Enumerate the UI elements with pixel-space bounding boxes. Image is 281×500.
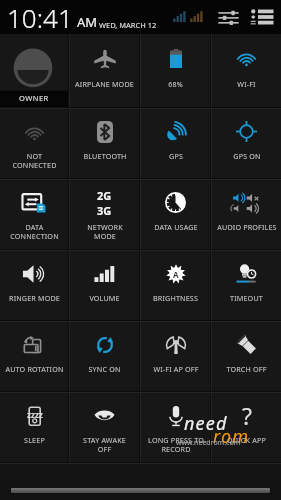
staticText: 2G — [97, 188, 112, 203]
staticText: NETWORK MODE — [87, 222, 123, 241]
staticText: AUDIO PROFILES — [217, 222, 277, 232]
staticText: NOT CONNECTED — [12, 151, 57, 170]
button[interactable]: zzzz — [0, 393, 68, 462]
staticText: need — [184, 411, 228, 436]
staticText: WI-FI — [237, 79, 256, 89]
button[interactable]: AIRPLANE MODE — [70, 34, 139, 107]
button[interactable]: Notifications list — [247, 5, 275, 29]
button[interactable]: AUTO ROTATION — [0, 322, 68, 391]
button[interactable]: 2G — [70, 180, 139, 249]
staticText: TORCH OFF — [226, 364, 267, 374]
staticText: zzzz — [27, 409, 43, 420]
staticText: AUTO ROTATION — [5, 364, 64, 374]
button[interactable]: ? — [212, 393, 281, 462]
button[interactable]: SYNC ON — [70, 322, 139, 391]
button[interactable]: STAY AWAKE OFF — [70, 393, 139, 462]
staticText: GPS — [169, 151, 183, 161]
staticText: 10:41 — [7, 0, 73, 34]
button[interactable]: LONG PRESS TO RECORD — [141, 393, 210, 462]
button[interactable]: DATA CONNECTION — [0, 180, 68, 249]
button[interactable]: OWNER — [0, 34, 68, 107]
staticText: QUICK APP — [227, 435, 266, 445]
button[interactable]: WI-FI AP OFF — [141, 322, 210, 391]
staticText: DATA CONNECTION — [10, 222, 59, 241]
button[interactable]: RINGER MODE — [0, 251, 68, 320]
staticText: BRIGHTNESS — [153, 293, 198, 303]
staticText: ? — [242, 400, 252, 431]
staticText: AIRPLANE MODE — [75, 79, 134, 89]
staticText: rom — [213, 424, 250, 449]
staticText: 3G — [97, 203, 112, 218]
staticText: AM — [77, 13, 98, 31]
button[interactable]: AUDIO PROFILES — [212, 180, 281, 249]
button[interactable]: Settings — [215, 5, 241, 29]
button[interactable]: GPS ON — [212, 109, 281, 178]
staticText: STAY AWAKE OFF — [83, 435, 126, 454]
button[interactable]: TORCH OFF — [212, 322, 281, 391]
staticText: BLUETOOTH — [83, 151, 127, 161]
button[interactable]: BLUETOOTH — [70, 109, 139, 178]
button[interactable]: VOLUME — [70, 251, 139, 320]
staticText: www.needrom.com — [176, 438, 241, 448]
staticText: GPS ON — [233, 151, 261, 161]
staticText: SLEEP — [24, 435, 45, 445]
staticText: OWNER — [19, 93, 49, 103]
button[interactable]: TIMEOUT — [212, 251, 281, 320]
button[interactable]: NOT CONNECTED — [0, 109, 68, 178]
staticText: TIMEOUT — [230, 293, 263, 303]
staticText: RINGER MODE — [9, 293, 60, 303]
staticText: SYNC ON — [88, 364, 121, 374]
staticText: LONG PRESS TO RECORD — [148, 435, 204, 454]
button[interactable]: GPS — [141, 109, 210, 178]
button[interactable]: 68% — [141, 34, 210, 107]
button[interactable]: A — [141, 251, 210, 320]
button[interactable]: WI-FI — [212, 34, 281, 107]
staticText: DATA USAGE — [154, 222, 198, 232]
staticText: 68% — [168, 79, 183, 89]
button[interactable]: DATA USAGE — [141, 180, 210, 249]
staticText: A — [173, 269, 179, 280]
staticText: WED, MARCH 12 — [99, 20, 157, 30]
staticText: VOLUME — [89, 293, 120, 303]
staticText: WI-FI AP OFF — [153, 364, 199, 374]
